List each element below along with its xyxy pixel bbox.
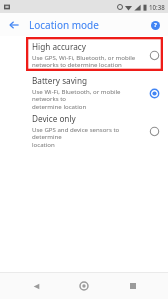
- button[interactable]: High accuracy: [0, 36, 168, 74]
- staticText: Battery saving: [32, 75, 88, 86]
- button[interactable]: Help: [147, 17, 163, 33]
- staticText: Device only: [32, 113, 76, 124]
- button[interactable]: Battery saving: [0, 74, 168, 112]
- button[interactable]: Home: [71, 273, 97, 299]
- button[interactable]: Device only: [0, 112, 168, 150]
- staticText: Use Wi-Fi, Bluetooth, or mobile networks…: [32, 87, 146, 111]
- staticText: Use GPS, Wi-Fi, Bluetooth, or mobile net…: [32, 53, 136, 69]
- staticText: High accuracy: [32, 41, 86, 52]
- staticText: 10:38: [149, 3, 165, 11]
- staticText: Location mode: [29, 18, 99, 32]
- button[interactable]: Back: [23, 273, 49, 299]
- staticText: ?: [154, 21, 157, 29]
- button[interactable]: Back: [5, 16, 23, 34]
- button[interactable]: Recents: [120, 273, 146, 299]
- staticText: Use GPS and device sensors to determine …: [32, 125, 146, 149]
